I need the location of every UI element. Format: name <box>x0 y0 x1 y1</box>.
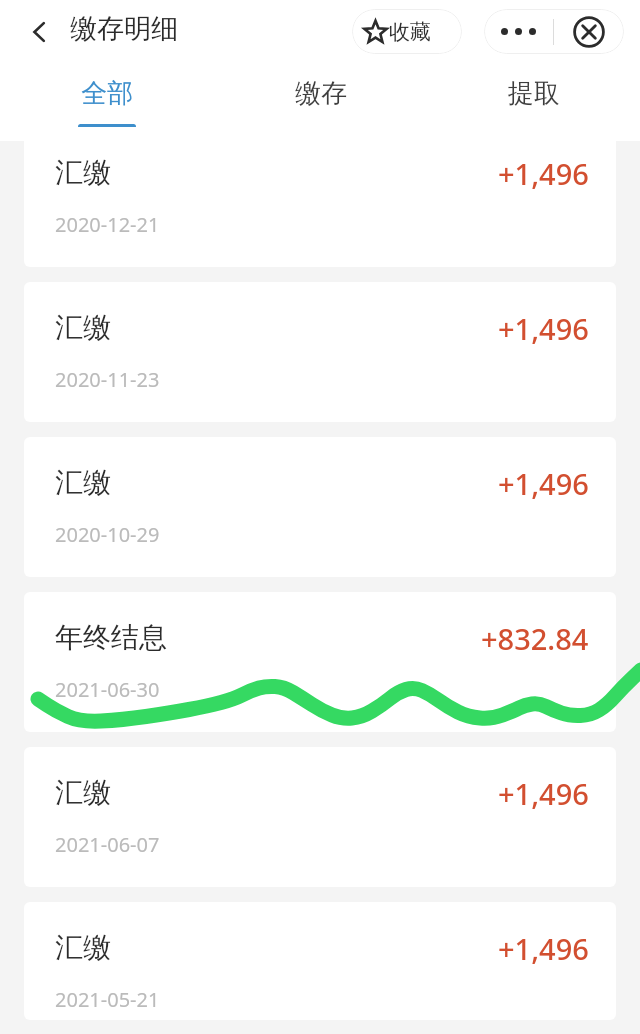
staticText: 年终结息 <box>55 620 167 655</box>
staticText: 2021-05-21 <box>55 986 160 1013</box>
staticText: 汇缴 <box>55 465 111 500</box>
button[interactable]: 汇缴 <box>24 282 616 422</box>
staticText: 2021-06-30 <box>55 676 160 703</box>
staticText: 汇缴 <box>55 310 111 345</box>
staticText: +1,496 <box>498 929 589 968</box>
staticText: 提取 <box>508 77 560 110</box>
button[interactable]: Close <box>554 9 624 54</box>
button[interactable]: 汇缴 <box>24 127 616 267</box>
staticText: +1,496 <box>498 309 589 348</box>
staticText: 2021-06-07 <box>55 831 160 858</box>
button[interactable]: 收藏 <box>352 9 462 54</box>
button[interactable]: 汇缴 <box>24 902 616 1020</box>
staticText: 汇缴 <box>55 930 111 965</box>
button[interactable]: 提取 <box>427 64 640 141</box>
button[interactable]: 汇缴 <box>24 437 616 577</box>
staticText: 2020-11-23 <box>55 366 160 393</box>
staticText: 2020-12-21 <box>55 211 160 238</box>
staticText: +832.84 <box>481 619 589 658</box>
staticText: 汇缴 <box>55 775 111 810</box>
button[interactable]: More options <box>484 9 553 54</box>
staticText: +1,496 <box>498 774 589 813</box>
button[interactable]: 缴存 <box>214 64 427 141</box>
staticText: 缴存 <box>295 77 347 110</box>
button[interactable]: Back <box>18 11 60 53</box>
button[interactable]: 汇缴 <box>24 747 616 887</box>
staticText: 收藏 <box>389 19 431 45</box>
staticText: +1,496 <box>498 464 589 503</box>
button[interactable]: 年终结息 <box>24 592 616 732</box>
staticText: +1,496 <box>498 154 589 193</box>
staticText: 汇缴 <box>55 155 111 190</box>
staticText: 2020-10-29 <box>55 521 160 548</box>
button[interactable]: 全部 <box>0 64 214 141</box>
staticText: 全部 <box>81 77 133 110</box>
staticText: 缴存明细 <box>70 12 178 46</box>
